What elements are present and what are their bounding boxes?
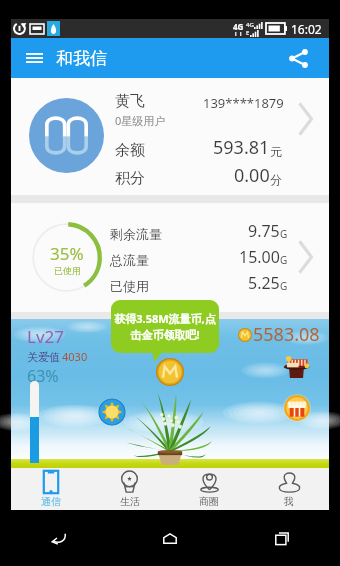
button[interactable]: Lv27 bbox=[11, 319, 329, 475]
staticText: 16:02 bbox=[291, 21, 322, 37]
staticText: G bbox=[280, 253, 288, 267]
button[interactable]: 我 bbox=[249, 468, 329, 510]
staticText: 5.25 bbox=[248, 272, 280, 294]
button[interactable]: Recents bbox=[264, 520, 300, 556]
staticText: 通信 bbox=[41, 495, 61, 508]
staticText: 关爱值 bbox=[27, 350, 60, 364]
staticText: 已使用 bbox=[54, 265, 81, 276]
button[interactable]: 通信 bbox=[11, 468, 90, 510]
staticText: 总流量 bbox=[110, 252, 149, 268]
staticText: 获得3.58M流量币,点 击金币领取吧! bbox=[114, 311, 216, 342]
staticText: 35% bbox=[50, 242, 84, 265]
staticText: 4G bbox=[246, 21, 254, 29]
button[interactable]: Home bbox=[152, 520, 188, 556]
staticText: 黄飞 bbox=[115, 92, 145, 111]
staticText: 15.00 bbox=[239, 246, 280, 268]
staticText: 我 bbox=[284, 495, 294, 508]
staticText: 积分 bbox=[115, 169, 145, 188]
staticText: 已使用 bbox=[110, 278, 149, 294]
button[interactable]: 35% bbox=[11, 203, 329, 312]
staticText: 商圈 bbox=[199, 495, 219, 508]
button[interactable]: 商圈 bbox=[169, 468, 249, 510]
button[interactable]: 生活 bbox=[90, 468, 169, 510]
staticText: 4030 bbox=[62, 349, 88, 364]
staticText: G bbox=[280, 279, 288, 293]
button[interactable]: Menu bbox=[17, 41, 51, 75]
staticText: 余额 bbox=[115, 141, 145, 160]
button[interactable]: 黄飞 bbox=[11, 78, 329, 195]
staticText: 元 bbox=[270, 144, 282, 159]
staticText: 0.00 bbox=[234, 163, 270, 188]
staticText: 9.75 bbox=[248, 220, 280, 242]
staticText: 剩余流量 bbox=[110, 226, 162, 242]
staticText: 593.81 bbox=[213, 135, 270, 160]
staticText: E bbox=[246, 29, 250, 37]
button[interactable]: Back bbox=[40, 520, 76, 556]
staticText: 分 bbox=[270, 172, 282, 187]
staticText: 63% bbox=[27, 365, 59, 387]
staticText: 0星级用户 bbox=[115, 113, 166, 128]
staticText: 和我信 bbox=[56, 48, 107, 69]
staticText: G bbox=[280, 227, 288, 241]
staticText: 4G bbox=[233, 21, 244, 32]
button[interactable]: Share bbox=[283, 43, 313, 73]
staticText: Lv27 bbox=[27, 325, 64, 348]
staticText: 5583.08 bbox=[253, 322, 320, 347]
staticText: 生活 bbox=[120, 495, 140, 508]
staticText: 139****1879 bbox=[203, 94, 284, 112]
